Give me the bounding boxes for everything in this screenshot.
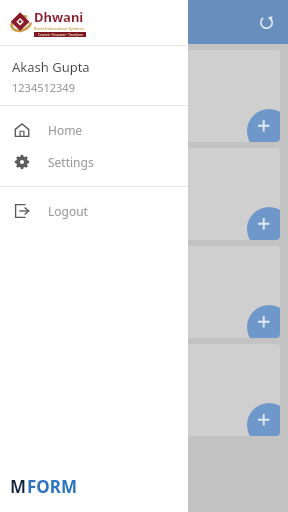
staticText: Rural Information Systems [34,26,85,31]
button[interactable]: Settings [0,146,188,178]
staticText: Connect • Empower • Transform [38,33,83,37]
staticText: Not Synced [20,216,74,230]
button[interactable]: Add [247,305,280,338]
button[interactable]: Logout [0,195,188,227]
staticText: M [10,475,27,498]
button[interactable]: Home [0,114,188,146]
button[interactable]: Total 9 [10,50,280,142]
button[interactable]: Add [247,403,280,436]
staticText: Settings [48,154,94,170]
button[interactable]: Total 0 [10,344,280,436]
button[interactable]: Refresh [253,9,279,35]
button[interactable]: Add [247,207,280,240]
staticText: Home [48,122,83,138]
staticText: 1234512349 [12,80,75,95]
staticText: Total 9 [20,104,52,118]
staticText: FORM [27,475,77,498]
button[interactable]: Total 8 [10,246,280,338]
staticText: Akash Gupta [12,58,90,76]
button[interactable]: Total 5 [10,148,280,240]
staticText: Not Synced [20,118,74,132]
button[interactable]: Add [247,109,280,142]
staticText: Dhwani [34,8,84,26]
staticText: Total 5 [20,202,52,216]
staticText: Logout [48,203,88,219]
